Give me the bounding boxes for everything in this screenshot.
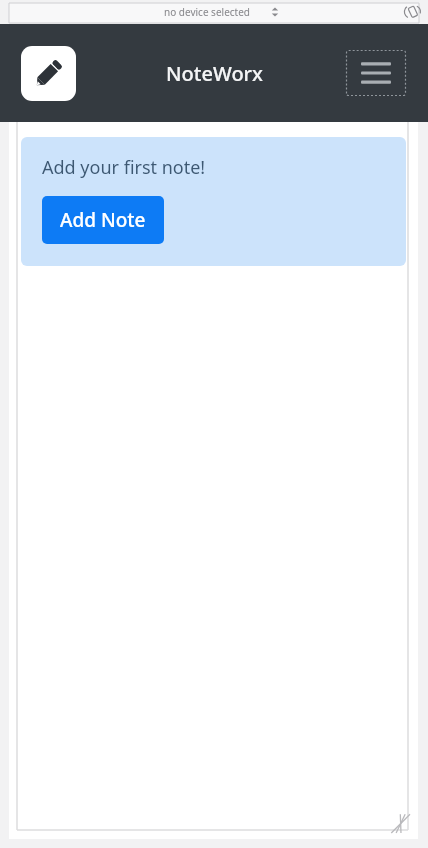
button[interactable]: Select device: [268, 5, 282, 19]
button[interactable]: NoteWorx logo: [21, 46, 76, 101]
button[interactable]: Add Note: [42, 196, 164, 244]
button[interactable]: Add your first note!: [21, 137, 406, 266]
staticText: NoteWorx: [166, 60, 263, 87]
button[interactable]: Menu: [346, 50, 406, 96]
staticText: Add your first note!: [42, 155, 206, 180]
button[interactable]: no device selected: [160, 5, 254, 19]
button[interactable]: Rotate device: [402, 2, 422, 22]
staticText: no device selected: [164, 5, 250, 19]
staticText: Add Note: [60, 207, 146, 233]
